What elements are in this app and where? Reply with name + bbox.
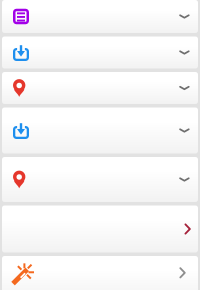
button[interactable] (2, 72, 198, 104)
button[interactable] (2, 36, 198, 68)
button[interactable] (2, 256, 198, 290)
button[interactable] (2, 0, 198, 33)
button[interactable] (2, 205, 198, 252)
button[interactable] (2, 107, 198, 153)
button[interactable] (2, 157, 198, 202)
